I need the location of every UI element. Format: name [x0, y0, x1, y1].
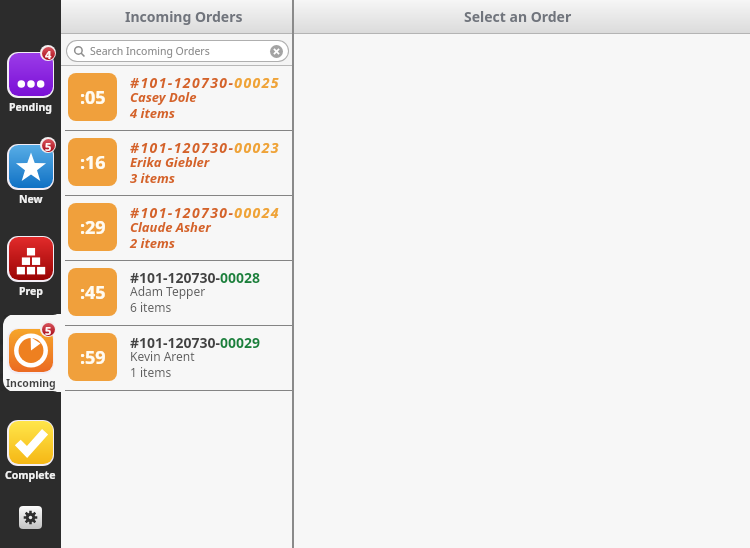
staticText: :59 — [80, 345, 106, 370]
staticText: 1 items — [130, 364, 172, 380]
staticText: Claude Asher — [130, 218, 211, 236]
staticText: #101-120730-00028 — [130, 268, 261, 287]
staticText: :29 — [80, 215, 106, 240]
button[interactable]: :16 — [61, 131, 294, 195]
staticText: New — [19, 192, 43, 206]
staticText: #101-120730-00025 — [130, 73, 280, 92]
staticText: #101-120730-00029 — [130, 333, 261, 352]
staticText: Casey Dole — [130, 88, 197, 106]
staticText: Search Incoming Orders — [90, 44, 210, 58]
staticText: 5 — [45, 139, 52, 152]
staticText: 4 — [45, 47, 52, 60]
staticText: #101-120730-00023 — [130, 138, 280, 157]
button[interactable]: :29 — [61, 196, 294, 260]
staticText: 6 items — [130, 299, 172, 315]
button[interactable]: :45 — [61, 261, 294, 325]
staticText: 3 items — [130, 169, 175, 187]
staticText: #101-120730-00024 — [130, 203, 280, 222]
button[interactable]: Clear search — [270, 45, 283, 58]
button[interactable]: New — [0, 135, 61, 207]
staticText: Kevin Arent — [130, 348, 195, 364]
staticText: Prep — [19, 284, 43, 298]
button[interactable]: Settings — [19, 506, 42, 529]
staticText: Pending — [9, 100, 52, 114]
staticText: Adam Tepper — [130, 283, 206, 299]
button[interactable]: :59 — [61, 326, 294, 390]
staticText: Incoming — [6, 376, 56, 390]
button[interactable]: Incoming — [0, 319, 61, 391]
staticText: Select an Order — [464, 7, 572, 26]
button[interactable]: :05 — [61, 66, 294, 130]
staticText: Incoming Orders — [125, 7, 243, 26]
button[interactable]: Search Incoming Orders — [67, 41, 288, 61]
button[interactable]: Complete — [0, 411, 61, 483]
staticText: :45 — [80, 280, 106, 305]
staticText: Complete — [5, 468, 56, 482]
staticText: Erika Giebler — [130, 153, 210, 171]
button[interactable]: Prep — [0, 227, 61, 299]
button[interactable]: Pending — [0, 43, 61, 115]
staticText: 2 items — [130, 234, 175, 252]
staticText: 4 items — [130, 104, 175, 122]
staticText: :05 — [80, 85, 106, 110]
staticText: 5 — [45, 323, 52, 336]
staticText: :16 — [80, 150, 106, 175]
